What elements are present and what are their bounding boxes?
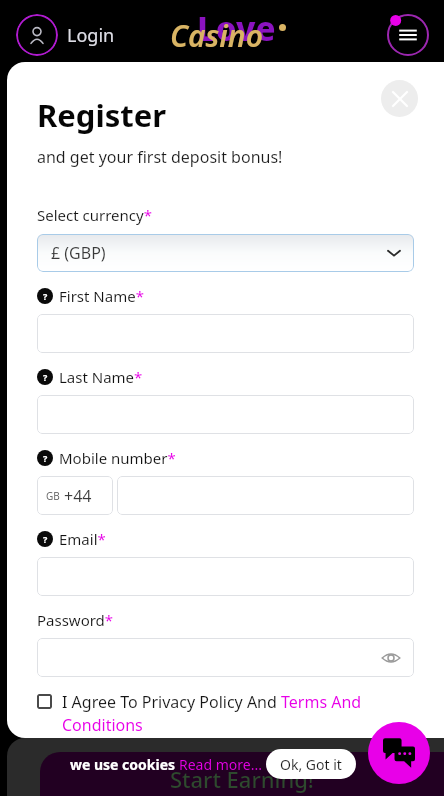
staticText: Casino bbox=[170, 15, 263, 56]
button[interactable]: Help bbox=[37, 531, 53, 547]
button[interactable] bbox=[37, 395, 414, 434]
staticText: GB bbox=[46, 489, 60, 503]
staticText: Mobile number* bbox=[59, 448, 176, 468]
button[interactable]: Chat bbox=[368, 722, 430, 784]
staticText: +44 bbox=[64, 485, 92, 507]
staticText: ? bbox=[43, 533, 48, 545]
staticText: Start Earning! bbox=[170, 764, 314, 794]
staticText: ? bbox=[43, 290, 48, 302]
staticText: £ (GBP) bbox=[51, 242, 106, 264]
staticText: ? bbox=[43, 371, 48, 383]
button[interactable] bbox=[37, 557, 414, 596]
button[interactable]: Show password bbox=[37, 638, 414, 677]
staticText: Last Name* bbox=[59, 367, 143, 387]
staticText: First Name* bbox=[59, 286, 144, 306]
button[interactable]: Read more... bbox=[179, 755, 262, 774]
button[interactable] bbox=[37, 314, 414, 353]
button[interactable]: Help bbox=[37, 450, 53, 466]
button[interactable]: I Agree To Privacy Policy And Terms And … bbox=[37, 691, 414, 736]
button[interactable] bbox=[117, 476, 414, 515]
staticText: and get your first deposit bonus! bbox=[37, 146, 283, 168]
button[interactable]: Help bbox=[37, 369, 53, 385]
button[interactable]: £ (GBP) bbox=[37, 234, 414, 272]
staticText: I Agree To Privacy Policy And Terms And … bbox=[62, 691, 414, 736]
button[interactable]: GB bbox=[37, 476, 113, 515]
button[interactable]: Login bbox=[16, 14, 115, 56]
staticText: Login bbox=[67, 23, 115, 48]
button[interactable]: Menu bbox=[386, 13, 430, 57]
button[interactable]: Help bbox=[37, 288, 53, 304]
staticText: Email* bbox=[59, 529, 106, 549]
staticText: Password* bbox=[37, 610, 114, 630]
staticText: we use cookies bbox=[70, 755, 179, 774]
button[interactable]: Close bbox=[381, 80, 418, 117]
staticText: Ok, Got it bbox=[280, 755, 342, 774]
button[interactable]: Show password bbox=[380, 647, 402, 669]
staticText: Select currency* bbox=[37, 205, 152, 225]
staticText: Register bbox=[37, 94, 167, 136]
button[interactable]: Ok, Got it bbox=[266, 749, 356, 779]
staticText: ? bbox=[43, 452, 48, 464]
staticText: Love bbox=[197, 6, 276, 51]
